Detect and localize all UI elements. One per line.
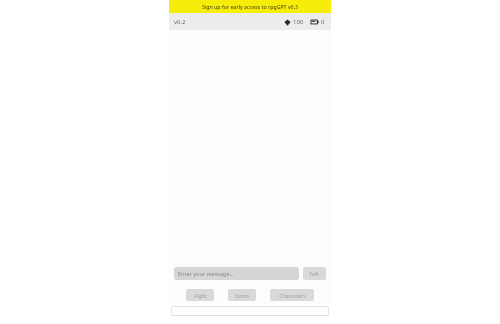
- staticText: Fight: [194, 292, 207, 299]
- staticText: Talk: [309, 270, 320, 277]
- button[interactable]: Gems: [283, 18, 305, 26]
- staticText: 100: [293, 18, 304, 26]
- staticText: Characters: [279, 292, 306, 299]
- button[interactable]: Characters: [270, 289, 314, 301]
- staticText: Sign up for early access to rpgGPT v0.3: [202, 3, 298, 10]
- button[interactable]: Fight: [186, 289, 214, 301]
- staticText: 0: [321, 18, 325, 26]
- button[interactable]: [171, 306, 329, 316]
- staticText: v0.2: [174, 18, 186, 26]
- button[interactable]: Enter your message...: [174, 267, 299, 280]
- button[interactable]: Talk: [303, 267, 326, 280]
- staticText: Enter your message...: [178, 270, 234, 277]
- button[interactable]: Sign up for early access to rpgGPT v0.3: [169, 0, 331, 13]
- staticText: Items: [235, 292, 249, 299]
- button[interactable]: Items: [228, 289, 256, 301]
- button[interactable]: Energy: [310, 18, 326, 26]
